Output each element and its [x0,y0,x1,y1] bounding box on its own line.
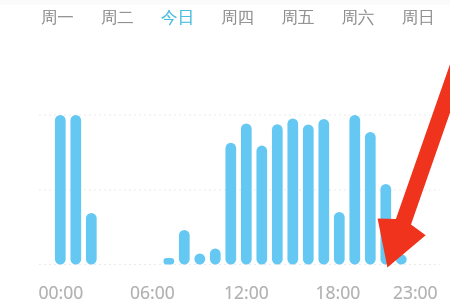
button[interactable] [328,0,388,34]
button[interactable] [87,0,147,34]
button[interactable] [147,0,207,34]
button[interactable] [268,0,328,34]
button[interactable] [388,0,448,34]
button[interactable] [27,0,87,34]
button[interactable] [208,0,268,34]
